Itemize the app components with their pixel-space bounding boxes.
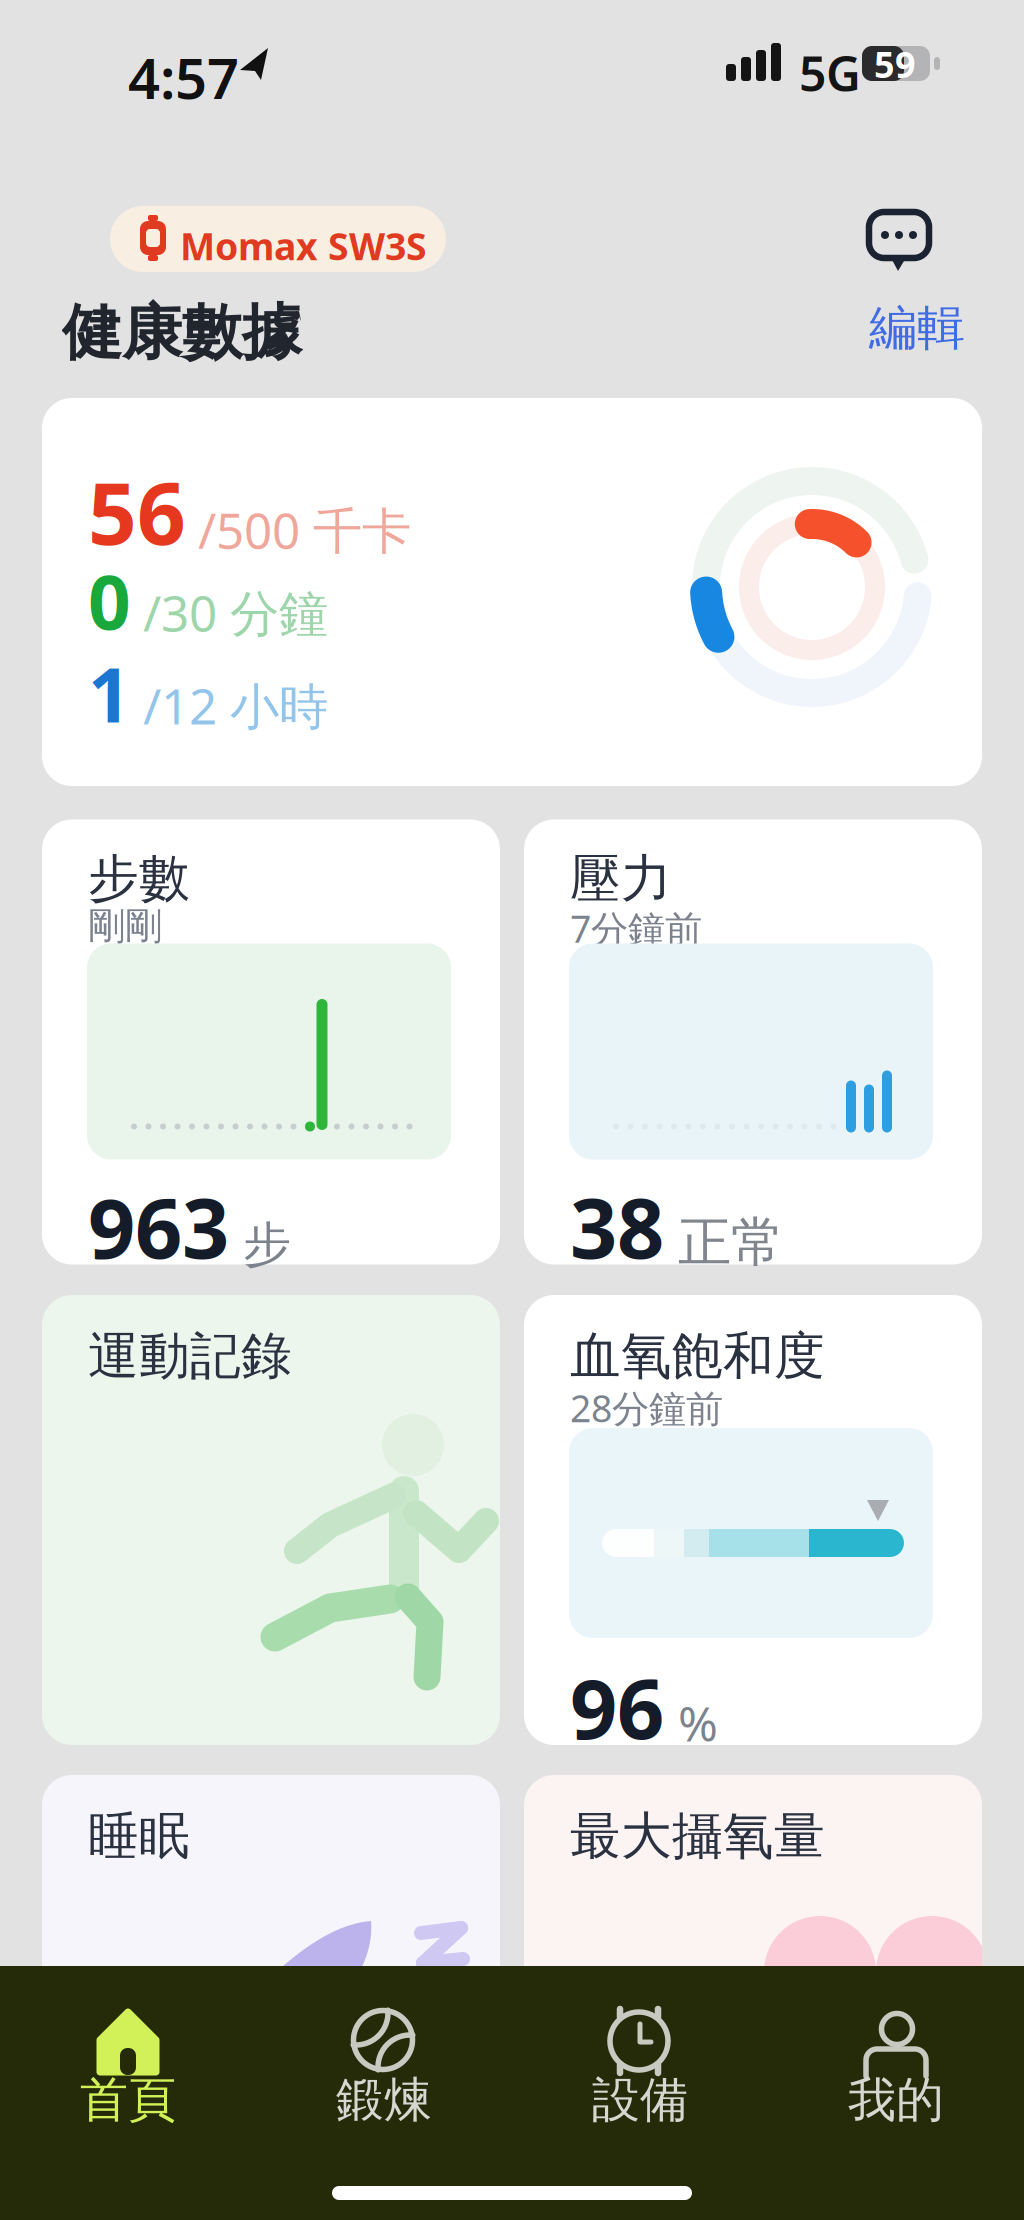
button[interactable]: 我的 [768, 1966, 1024, 2220]
staticText: 7分鐘前 [570, 903, 702, 953]
staticText: 4:57 [128, 40, 239, 114]
staticText: 正常 [678, 1210, 784, 1275]
staticText: 血氧飽和度 [570, 1325, 825, 1387]
staticText: 設備 [592, 2070, 688, 2129]
staticText: 剛剛 [88, 903, 162, 949]
button[interactable]: 壓力 [524, 819, 982, 1264]
button[interactable]: 編輯 [869, 298, 965, 357]
button[interactable]: Momax SW3S [110, 206, 446, 272]
button[interactable]: 運動記錄 [42, 1295, 500, 1745]
button[interactable] [869, 212, 929, 274]
staticText: 最大攝氧量 [570, 1805, 825, 1867]
button[interactable]: 睡眠 [42, 1775, 500, 2220]
staticText: 睡眠 [88, 1805, 190, 1867]
staticText: 壓力 [570, 847, 672, 910]
button[interactable]: 步數 [42, 819, 500, 1264]
staticText: 步數 [88, 847, 190, 910]
staticText: 編輯 [869, 298, 965, 357]
staticText: /30 分鐘 [143, 580, 328, 645]
staticText: 59 [874, 40, 916, 88]
staticText: /500 千卡 [198, 497, 411, 562]
staticText: /12 小時 [143, 673, 328, 738]
staticText: 步 [243, 1215, 291, 1274]
button[interactable]: 血氧飽和度 [524, 1295, 982, 1745]
button[interactable]: 56 [42, 398, 982, 786]
staticText: Momax SW3S [180, 221, 427, 271]
staticText: 1 [88, 644, 131, 743]
staticText: 963 [88, 1171, 229, 1281]
staticText: 運動記錄 [88, 1325, 292, 1387]
button[interactable]: 最大攝氧量 [524, 1775, 982, 2220]
staticText: 首頁 [80, 2070, 176, 2129]
staticText: 0 [88, 551, 131, 650]
staticText: 38 [570, 1171, 664, 1281]
button[interactable]: 鍛煉 [256, 1966, 512, 2220]
button[interactable]: 設備 [512, 1966, 768, 2220]
staticText: 健康數據 [62, 296, 302, 370]
staticText: 鍛煉 [336, 2070, 432, 2129]
staticText: 96 [570, 1652, 664, 1762]
staticText: 我的 [848, 2070, 944, 2129]
staticText: 28分鐘前 [570, 1383, 723, 1433]
staticText: 5G [799, 41, 861, 105]
button[interactable]: 首頁 [0, 1966, 256, 2220]
staticText: 56 [88, 455, 186, 568]
staticText: % [678, 1691, 718, 1755]
